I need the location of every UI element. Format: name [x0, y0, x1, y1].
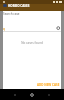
button[interactable]: Search	[56, 26, 61, 31]
staticText: Search case	[3, 12, 20, 16]
button[interactable]: Recents	[47, 93, 51, 97]
button[interactable]: Back	[13, 93, 17, 97]
button[interactable]: Home	[30, 93, 34, 97]
staticText: q	[3, 27, 5, 31]
staticText: No cases found	[3, 41, 61, 45]
staticText: HOMEO CASES	[8, 4, 30, 7]
staticText: ADD NEW CASE	[37, 83, 60, 87]
button[interactable]: ADD NEW CASE	[36, 83, 61, 87]
